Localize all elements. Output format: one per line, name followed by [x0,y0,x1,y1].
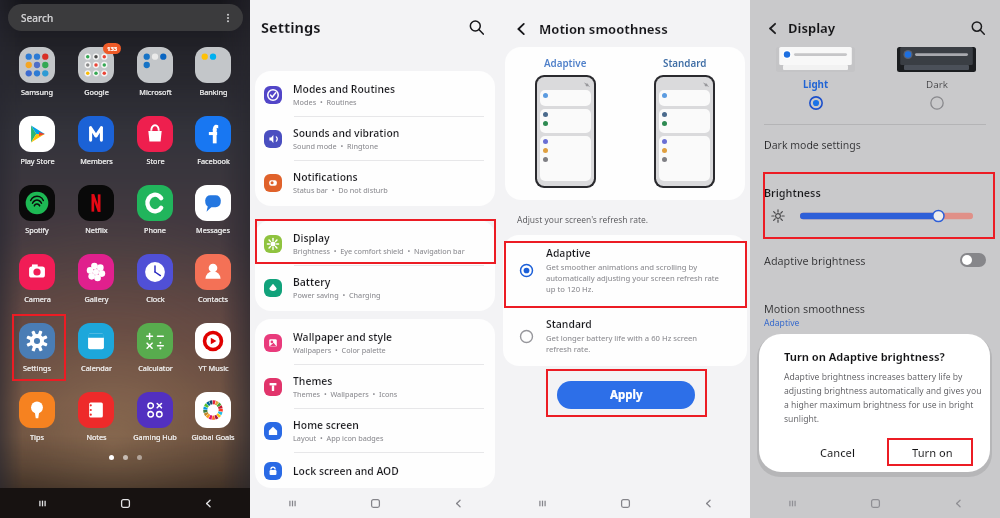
button[interactable]: Adaptive brightness [750,245,1000,275]
button[interactable]: Adaptive [503,235,747,306]
button[interactable]: Standard [503,306,747,366]
button[interactable]: Back [167,488,250,518]
button[interactable]: Cancel [799,438,875,466]
staticText: Adaptive [546,246,591,260]
button[interactable]: Play Store [9,116,65,166]
staticText: Sound mode • Ringtone [293,141,379,151]
button[interactable]: Netflix [68,185,124,235]
staticText: YT Music [198,363,229,373]
staticText: Themes • Wallpapers • Icons [293,389,398,399]
button[interactable]: Store [127,116,183,166]
staticText: Camera [24,294,51,304]
button[interactable]: 133 [68,47,124,97]
staticText: Status bar • Do not disturb [293,185,388,195]
button[interactable]: Microsoft [127,47,183,97]
button[interactable] [800,208,973,224]
staticText: Search [21,11,54,25]
button[interactable]: Themes [255,365,495,409]
button[interactable]: Gaming Hub [127,392,183,442]
staticText: Turn on Adaptive brightness? [784,349,945,364]
button[interactable]: Back [763,19,781,37]
staticText: Motion smoothness [539,20,668,38]
button[interactable]: Recents [500,488,584,518]
staticText: Contacts [198,294,228,304]
staticText: Adjust your screen's refresh rate. [517,214,649,226]
button[interactable]: Samsung [9,47,65,97]
button[interactable]: Recents [750,488,834,518]
button[interactable]: Battery [255,266,495,309]
button[interactable]: Turn on [894,438,970,466]
button[interactable]: Recents [0,488,84,518]
button[interactable]: Search [8,4,243,31]
staticText: Sounds and vibration [293,126,400,140]
button[interactable]: YT Music [185,323,241,373]
staticText: Standard [663,57,707,70]
button[interactable]: Home [334,488,417,518]
button[interactable]: Messages [185,185,241,235]
button[interactable]: Light [776,47,855,110]
button[interactable]: Search [968,18,988,38]
button[interactable]: Notes [68,392,124,442]
staticText: Apply [610,387,643,403]
staticText: Themes [293,374,333,388]
button[interactable]: Gallery [68,254,124,304]
staticText: Home screen [293,418,359,432]
staticText: Phone [144,225,166,235]
button[interactable]: Members [68,116,124,166]
button[interactable]: Apply [557,381,695,409]
button[interactable]: Phone [127,185,183,235]
staticText: Turn on [912,445,953,460]
button[interactable]: Facebook [185,116,241,166]
staticText: Standard [546,317,592,331]
button[interactable]: Modes and Routines [255,73,495,117]
button[interactable]: Home screen [255,409,495,453]
staticText: Modes and Routines [293,82,396,96]
staticText: Adaptive brightness [764,253,866,268]
button[interactable]: Back [417,488,500,518]
button[interactable]: Recents [250,488,334,518]
button[interactable]: Tips [9,392,65,442]
staticText: Calculator [138,363,173,373]
button[interactable]: Spotify [9,185,65,235]
button[interactable]: Camera [9,254,65,304]
button[interactable]: Home [834,488,917,518]
button[interactable]: Sounds and vibration [255,117,495,161]
staticText: Power saving • Charging [293,290,381,300]
button[interactable]: Back [667,488,750,518]
button[interactable]: Global Goals [185,392,241,442]
button[interactable]: Display [255,222,495,266]
button[interactable]: Calendar [68,323,124,373]
staticText: Gallery [84,294,109,304]
button[interactable]: Lock screen and AOD [255,453,495,488]
staticText: Layout • App icon badges [293,433,384,443]
staticText: Notes [86,432,107,442]
button[interactable]: Dark [897,47,976,110]
staticText: Settings [23,363,51,373]
staticText: Samsung [21,87,53,97]
staticText: Spotify [25,225,49,235]
button[interactable]: Wallpaper and style [255,321,495,365]
button[interactable]: Contacts [185,254,241,304]
button[interactable]: Dark mode settings [750,130,1000,160]
button[interactable]: Back [917,488,1000,518]
staticText: Adaptive [764,317,800,329]
staticText: Light [803,78,829,91]
staticText: Dark mode settings [764,138,861,152]
staticText: Netflix [85,225,108,235]
staticText: Get longer battery life with a 60 Hz scr… [546,333,698,355]
staticText: Banking [199,87,228,97]
button[interactable]: Home [84,488,167,518]
staticText: Play Store [20,156,55,166]
button[interactable]: Clock [127,254,183,304]
staticText: Tips [30,432,44,442]
button[interactable]: Calculator [127,323,183,373]
staticText: Global Goals [191,432,235,442]
staticText: Adaptive [544,57,587,70]
button[interactable]: Settings [9,323,65,373]
button[interactable]: Notifications [255,161,495,204]
button[interactable]: Back [511,19,531,39]
button[interactable]: Search [464,15,488,39]
staticText: Wallpapers • Color palette [293,345,386,355]
button[interactable]: Home [584,488,667,518]
button[interactable]: Banking [185,47,241,97]
